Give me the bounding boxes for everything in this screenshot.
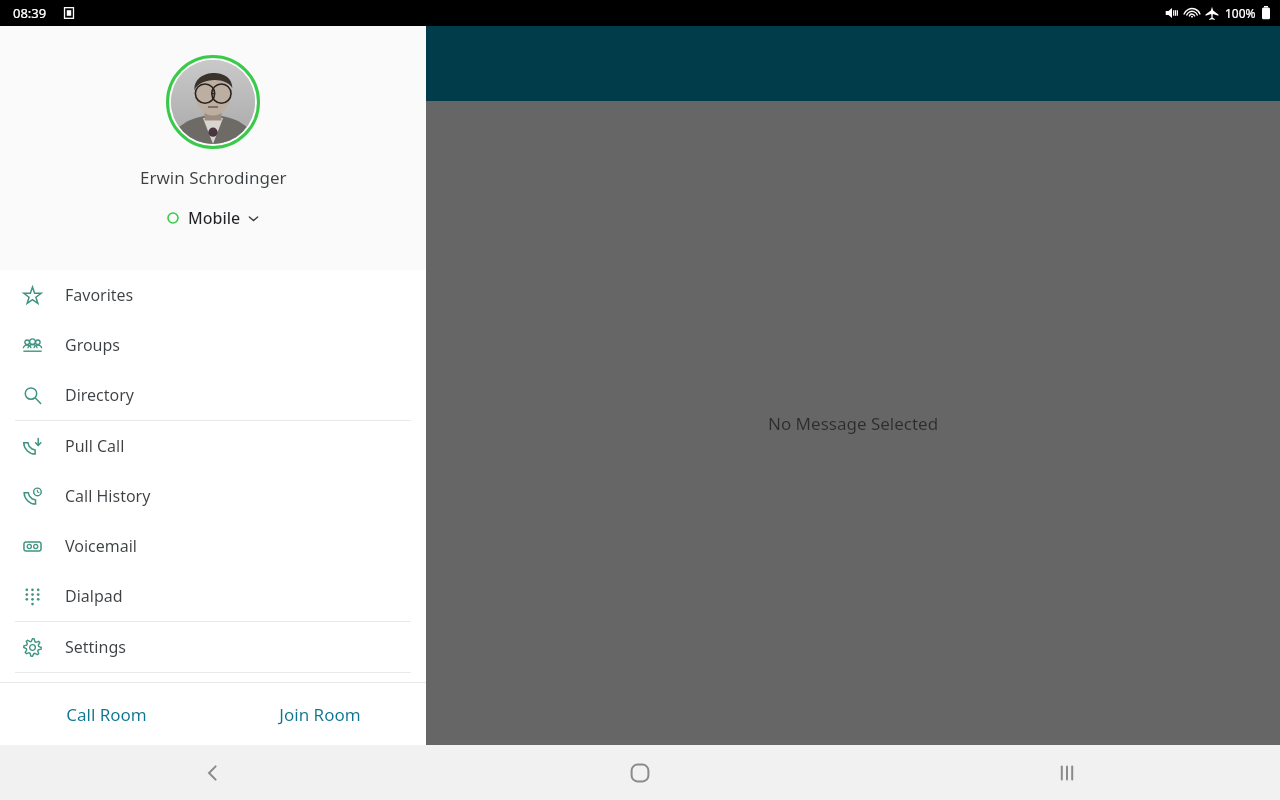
- staticText: Directory: [65, 384, 135, 406]
- staticText: 100%: [1225, 5, 1256, 21]
- staticText: Favorites: [65, 284, 134, 306]
- button[interactable]: Home: [426, 745, 853, 800]
- staticText: Call History: [65, 485, 151, 507]
- button[interactable]: Mobile: [161, 204, 266, 232]
- button[interactable]: Settings: [0, 622, 426, 672]
- staticText: Dialpad: [65, 585, 123, 607]
- staticText: Pull Call: [65, 435, 125, 457]
- staticText: Voicemail: [65, 535, 137, 557]
- button[interactable]: Pull Call: [0, 421, 426, 471]
- button[interactable]: Dialpad: [0, 571, 426, 621]
- staticText: 08:39: [13, 4, 47, 22]
- staticText: Groups: [65, 334, 121, 356]
- button[interactable]: Recent apps: [853, 745, 1280, 800]
- button[interactable]: Back: [0, 745, 426, 800]
- staticText: No Message Selected: [768, 412, 939, 435]
- staticText: Erwin Schrodinger: [140, 166, 287, 189]
- button[interactable]: Join Room: [213, 683, 426, 745]
- button[interactable]: Voicemail: [0, 521, 426, 571]
- staticText: Mobile: [188, 207, 241, 229]
- staticText: Settings: [65, 636, 126, 658]
- button[interactable]: Call History: [0, 471, 426, 521]
- button[interactable]: Call Room: [0, 683, 213, 745]
- button[interactable]: Groups: [0, 320, 426, 370]
- button[interactable]: Directory: [0, 370, 426, 420]
- staticText: Join Room: [279, 703, 361, 726]
- button[interactable]: Favorites: [0, 270, 426, 320]
- staticText: Call Room: [66, 703, 147, 726]
